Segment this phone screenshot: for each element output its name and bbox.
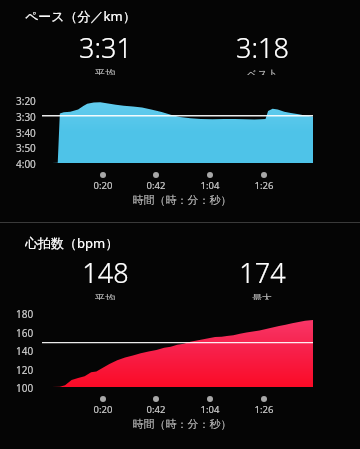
staticText: 3:50	[16, 141, 36, 155]
staticText: 最大	[252, 292, 272, 300]
staticText: 174	[239, 254, 286, 291]
staticText: 148	[82, 254, 129, 291]
button[interactable]: 3:18	[212, 29, 312, 75]
staticText: 0:42	[136, 179, 176, 192]
staticText: 0:42	[136, 403, 176, 416]
button[interactable]: 148	[55, 254, 155, 300]
staticText: 160	[16, 326, 34, 340]
staticText: 1:26	[244, 179, 284, 192]
staticText: 4:00	[16, 157, 36, 171]
staticText: 平均	[95, 67, 115, 75]
staticText: 3:18	[236, 29, 289, 66]
staticText: 0:20	[83, 179, 123, 192]
staticText: ベスト	[247, 67, 278, 75]
staticText: 3:40	[16, 126, 36, 140]
staticText: 1:04	[190, 403, 230, 416]
button[interactable]: 心拍数グラフ	[0, 223, 360, 449]
button[interactable]: ペースグラフ	[0, 0, 360, 222]
staticText: 100	[16, 381, 34, 395]
staticText: 140	[16, 344, 34, 358]
staticText: 平均	[95, 292, 115, 300]
button[interactable]: 3:31	[55, 29, 155, 75]
staticText: 3:30	[16, 110, 36, 124]
staticText: 3:31	[79, 29, 132, 66]
staticText: 0:20	[83, 403, 123, 416]
staticText: 時間（時：分：秒）	[92, 417, 272, 431]
staticText: 3:20	[16, 94, 36, 108]
button[interactable]: 174	[212, 254, 312, 300]
staticText: 180	[16, 307, 34, 321]
staticText: 心拍数（bpm）	[25, 234, 119, 252]
staticText: ペース（分／km）	[25, 7, 136, 25]
staticText: 120	[16, 363, 34, 377]
staticText: 1:04	[190, 179, 230, 192]
staticText: 1:26	[244, 403, 284, 416]
staticText: 時間（時：分：秒）	[92, 193, 272, 207]
